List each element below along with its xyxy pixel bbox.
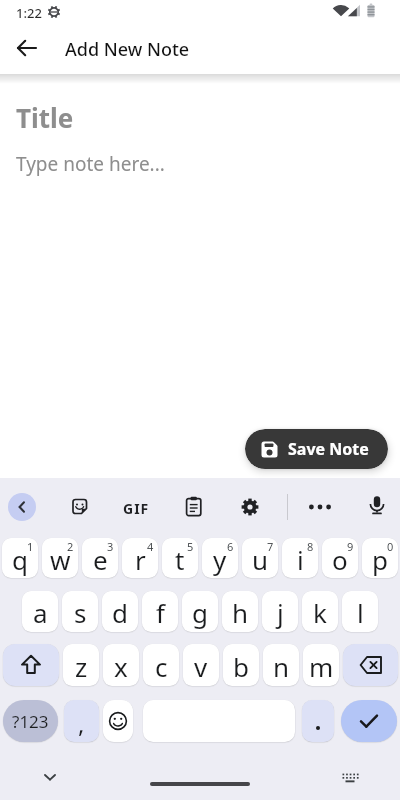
staticText: t bbox=[175, 542, 185, 577]
staticText: a bbox=[33, 595, 48, 630]
staticText: Type note here... bbox=[16, 151, 165, 177]
staticText: Add New Note bbox=[65, 37, 190, 62]
button[interactable]: g bbox=[182, 591, 218, 632]
button[interactable] bbox=[302, 700, 334, 742]
staticText: h bbox=[232, 595, 249, 630]
staticText: r bbox=[135, 542, 146, 577]
staticText: m bbox=[309, 649, 334, 684]
button[interactable] bbox=[14, 36, 42, 64]
button[interactable]: q bbox=[2, 538, 38, 578]
button[interactable] bbox=[343, 644, 398, 686]
staticText: d bbox=[112, 595, 128, 630]
staticText: y bbox=[213, 542, 227, 577]
button[interactable]: i bbox=[282, 538, 318, 578]
staticText: w bbox=[50, 542, 71, 577]
staticText: p bbox=[372, 542, 388, 577]
staticText: g bbox=[192, 595, 208, 630]
staticText: 9 bbox=[347, 539, 354, 554]
button[interactable] bbox=[367, 495, 387, 515]
button[interactable]: w bbox=[42, 538, 78, 578]
staticText: j bbox=[277, 595, 284, 630]
button[interactable]: n bbox=[263, 644, 299, 686]
staticText: 4 bbox=[147, 539, 154, 554]
button[interactable] bbox=[184, 496, 204, 516]
staticText: 5 bbox=[187, 539, 194, 554]
staticText: 1 bbox=[27, 539, 34, 554]
staticText: l bbox=[357, 595, 364, 630]
button[interactable]: z bbox=[63, 644, 99, 686]
staticText: i bbox=[297, 542, 304, 577]
staticText: 7 bbox=[267, 539, 274, 554]
button[interactable] bbox=[340, 770, 360, 786]
button[interactable] bbox=[69, 496, 91, 518]
button[interactable]: s bbox=[62, 591, 98, 632]
staticText: k bbox=[313, 595, 327, 630]
staticText: c bbox=[155, 649, 168, 684]
staticText: 0 bbox=[387, 539, 394, 554]
staticText: q bbox=[12, 542, 28, 577]
button[interactable]: j bbox=[262, 591, 298, 632]
staticText: 3 bbox=[107, 539, 114, 554]
button[interactable]: c bbox=[143, 644, 179, 686]
button[interactable]: u bbox=[242, 538, 278, 578]
button[interactable]: e bbox=[82, 538, 118, 578]
button[interactable]: l bbox=[342, 591, 378, 632]
button[interactable]: m bbox=[303, 644, 339, 686]
staticText: ?123 bbox=[12, 710, 49, 733]
staticText: x bbox=[114, 649, 128, 684]
staticText: z bbox=[75, 649, 88, 684]
button[interactable] bbox=[150, 782, 250, 786]
staticText: Save Note bbox=[288, 438, 369, 460]
staticText: 6 bbox=[227, 539, 234, 554]
button[interactable] bbox=[3, 644, 59, 686]
button[interactable] bbox=[308, 495, 332, 519]
button[interactable]: ?123 bbox=[3, 700, 58, 742]
staticText: n bbox=[273, 649, 290, 684]
staticText: e bbox=[93, 542, 108, 577]
button[interactable]: d bbox=[102, 591, 138, 632]
button[interactable]: a bbox=[22, 591, 58, 632]
staticText: 2 bbox=[67, 539, 74, 554]
staticText: GIF bbox=[123, 499, 150, 518]
button[interactable]: t bbox=[162, 538, 198, 578]
staticText: f bbox=[156, 595, 165, 630]
button[interactable] bbox=[341, 700, 397, 742]
staticText: , bbox=[78, 707, 85, 740]
staticText: Title bbox=[16, 100, 74, 135]
button[interactable] bbox=[103, 700, 133, 742]
button[interactable]: , bbox=[64, 700, 99, 742]
staticText: 1:22 bbox=[16, 4, 42, 22]
button[interactable]: r bbox=[122, 538, 158, 578]
button[interactable] bbox=[40, 770, 60, 784]
button[interactable]: x bbox=[103, 644, 139, 686]
button[interactable]: h bbox=[222, 591, 258, 632]
button[interactable]: f bbox=[142, 591, 178, 632]
button[interactable]: k bbox=[302, 591, 338, 632]
button[interactable]: v bbox=[183, 644, 219, 686]
button[interactable]: o bbox=[322, 538, 358, 578]
staticText: v bbox=[194, 649, 208, 684]
button[interactable]: Save Note bbox=[245, 429, 388, 469]
staticText: b bbox=[233, 649, 249, 684]
button[interactable]: y bbox=[202, 538, 238, 578]
button[interactable] bbox=[8, 493, 36, 521]
staticText: o bbox=[332, 542, 348, 577]
staticText: u bbox=[252, 542, 269, 577]
staticText: 8 bbox=[307, 539, 314, 554]
button[interactable] bbox=[240, 497, 260, 517]
staticText: s bbox=[74, 595, 87, 630]
button[interactable]: b bbox=[223, 644, 259, 686]
button[interactable]: p bbox=[362, 538, 398, 578]
